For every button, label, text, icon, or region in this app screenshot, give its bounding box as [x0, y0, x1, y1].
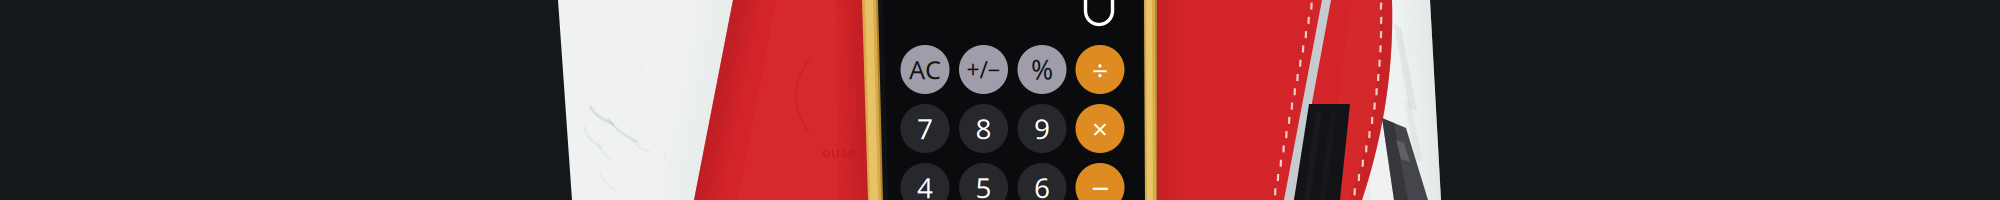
button[interactable]: −: [1075, 163, 1124, 200]
staticText: ÷: [1092, 51, 1108, 88]
button[interactable]: 7: [900, 104, 949, 153]
button[interactable]: 5: [959, 163, 1008, 200]
staticText: 6: [1034, 169, 1050, 200]
staticText: ×: [1092, 110, 1108, 147]
staticText: 5: [975, 169, 991, 200]
button[interactable]: AC: [900, 45, 949, 94]
staticText: AC: [909, 53, 941, 86]
button[interactable]: %: [1017, 45, 1066, 94]
staticText: 7: [917, 110, 933, 147]
button[interactable]: 4: [900, 163, 949, 200]
button[interactable]: ÷: [1075, 45, 1124, 94]
staticText: ouse: [822, 142, 857, 161]
staticText: %: [1031, 52, 1053, 87]
button[interactable]: 9: [1017, 104, 1066, 153]
staticText: 9: [1034, 110, 1050, 147]
button[interactable]: ×: [1075, 104, 1124, 153]
button[interactable]: 6: [1017, 163, 1066, 200]
staticText: +/−: [966, 54, 1000, 84]
button[interactable]: +/−: [959, 45, 1008, 94]
staticText: 8: [975, 110, 991, 147]
staticText: −: [1091, 166, 1109, 200]
staticText: 4: [917, 169, 933, 200]
button[interactable]: 8: [959, 104, 1008, 153]
